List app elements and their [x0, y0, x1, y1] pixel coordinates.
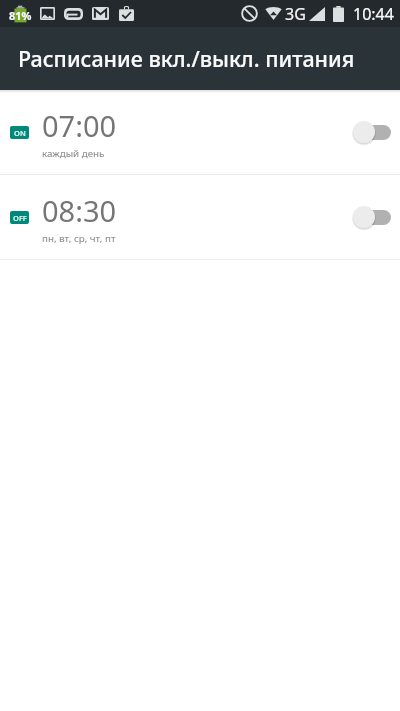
staticText: каждый день — [42, 147, 105, 160]
button[interactable]: OFF — [0, 175, 400, 259]
staticText: 10:44 — [353, 3, 394, 25]
staticText: 08:30 — [42, 191, 117, 230]
button[interactable]: Toggle schedule — [351, 202, 391, 232]
staticText: ON — [14, 128, 26, 138]
button[interactable]: ON — [0, 90, 400, 174]
staticText: 07:00 — [42, 106, 117, 145]
staticText: 81% — [9, 8, 32, 23]
staticText: пн, вт, ср, чт, пт — [42, 232, 116, 245]
staticText: Расписание вкл./выкл. питания — [18, 44, 355, 73]
staticText: OFF — [13, 213, 27, 223]
button[interactable]: Toggle schedule — [351, 117, 391, 147]
staticText: 3G — [285, 3, 306, 25]
